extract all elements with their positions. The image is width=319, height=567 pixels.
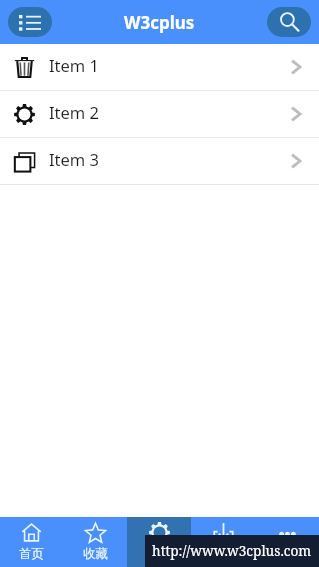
button[interactable]: Item 3 (0, 138, 319, 184)
staticText: 收藏 (83, 546, 108, 562)
button[interactable]: Item 2 (0, 91, 319, 137)
staticText: 更多 (275, 546, 300, 562)
button[interactable]: 收藏 (63, 517, 127, 567)
staticText: 下载 (211, 546, 236, 562)
staticText: W3cplus (124, 11, 195, 34)
button[interactable]: 设置 (127, 517, 191, 567)
button[interactable]: 首页 (0, 517, 63, 567)
staticText: Item 3 (49, 148, 100, 170)
button[interactable]: Menu (8, 7, 52, 37)
button[interactable]: 更多 (255, 517, 319, 567)
staticText: Item 1 (49, 54, 100, 76)
staticText: http://www.w3cplus.com (152, 541, 312, 560)
button[interactable]: Search (267, 7, 311, 37)
button[interactable]: 下载 (191, 517, 255, 567)
staticText: Item 2 (49, 101, 100, 123)
button[interactable]: Item 1 (0, 44, 319, 90)
staticText: 设置 (147, 546, 172, 562)
staticText: 首页 (19, 546, 44, 562)
